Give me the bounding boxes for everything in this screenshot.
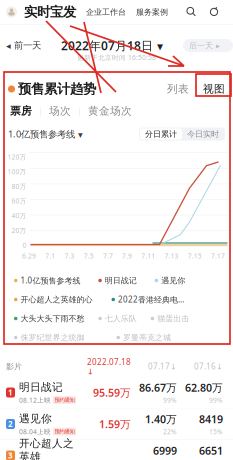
button[interactable]: 搜索 (186, 6, 197, 17)
staticText: 7.13 (165, 252, 179, 260)
staticText: 120万 (7, 152, 26, 161)
button[interactable]: 07.16↓ (177, 361, 223, 372)
staticText: 明日战记 (105, 276, 137, 285)
staticText: 列表 (167, 82, 189, 95)
button[interactable]: 大头大头下雨不愁 (14, 314, 84, 323)
staticText: 猫蛋出击 (157, 314, 189, 323)
button[interactable]: 实时宝发 (17, 4, 76, 20)
staticText: 影片 (6, 362, 22, 371)
button[interactable]: 2 (0, 408, 233, 439)
staticText: 遇见你 (19, 412, 52, 425)
button[interactable]: 侏罗纪世界之统御 (14, 333, 84, 342)
button[interactable]: 场次 (49, 104, 71, 117)
staticText: 7.7 (103, 252, 113, 260)
staticText: 6.29 (22, 252, 36, 260)
staticText: 7.9 (122, 252, 132, 260)
button[interactable]: 2022.07.18↓ (86, 357, 131, 376)
button[interactable]: 票房 (10, 104, 32, 117)
button[interactable]: 开心超人之英雄的心 (14, 295, 92, 304)
button[interactable]: 1 (0, 377, 233, 408)
staticText: | (193, 82, 199, 96)
staticText: 实时宝发 (24, 4, 76, 20)
staticText: 6651 (199, 443, 223, 458)
staticText: 22% (163, 427, 177, 436)
button[interactable]: 黄金场次 (88, 104, 132, 117)
staticText: 15% (209, 427, 223, 436)
staticText: 7.15 (188, 252, 202, 260)
staticText: 更新于北京时间 16:50:58 (77, 53, 156, 62)
staticText: 3 (8, 450, 13, 460)
button[interactable]: 后一天 ▸ (183, 39, 233, 52)
staticText: 95.59万 (93, 385, 131, 400)
staticText: 62.80万 (185, 380, 223, 395)
button[interactable]: 3 (0, 440, 233, 460)
button[interactable]: 今日实时 (182, 128, 224, 139)
staticText: 99% (163, 396, 177, 405)
staticText: 罗曼蒂克之城 (123, 333, 171, 342)
staticText: 大头大头下雨不愁 (20, 314, 84, 323)
staticText: 预约通知 (54, 397, 74, 403)
staticText: 86.67万 (139, 380, 177, 395)
button[interactable]: 刷新 (197, 6, 220, 17)
staticText: 07.16↓ (194, 361, 223, 372)
staticText: 0 (22, 241, 26, 249)
staticText: 07.17↓ (148, 361, 177, 372)
staticText: 08.04上映 (19, 427, 51, 436)
staticText: ◂ 前一天 (6, 40, 41, 51)
staticText: 99% (209, 396, 223, 405)
button[interactable]: 明日战记 (98, 276, 137, 285)
staticText: 视图 (203, 82, 225, 95)
staticText: 今日实时 (187, 129, 219, 139)
button[interactable]: 猫蛋出击 (151, 314, 189, 323)
button[interactable]: 视图 (203, 82, 225, 95)
button[interactable]: 遇见你 (155, 276, 185, 285)
button[interactable]: 列表 (167, 82, 189, 95)
staticText: 1 (8, 387, 13, 398)
staticText: 20万 (11, 226, 26, 235)
staticText: 分日累计 (145, 129, 177, 139)
staticText: 预约通知 (54, 428, 74, 435)
staticText: 侏罗纪世界之统御 (20, 333, 84, 342)
staticText: 七人乐队 (105, 314, 137, 323)
staticText: 场次 (49, 104, 71, 117)
staticText: 100万 (7, 167, 26, 176)
staticText: 预售累计趋势 (18, 81, 96, 97)
button[interactable]: 罗曼蒂克之城 (116, 333, 171, 342)
staticText: 7.1 (45, 252, 55, 260)
button[interactable]: 服务案例 (126, 7, 168, 17)
staticText: 1.0亿预售参考线 ▾ (8, 128, 83, 140)
staticText: 7.11 (141, 252, 155, 260)
button[interactable]: ◂ 前一天 (6, 40, 41, 51)
staticText: 遇见你 (161, 276, 185, 285)
button[interactable]: 分日累计 (140, 128, 182, 139)
staticText: 7.5 (84, 252, 94, 260)
staticText: 6999 (153, 443, 177, 458)
staticText: 服务案例 (136, 7, 168, 17)
button[interactable]: 2022香港经典电… (111, 294, 184, 305)
staticText: 7.17 (211, 252, 225, 260)
staticText: 票房 (10, 104, 32, 117)
staticText: 2022年07月18日 ▾ (61, 37, 163, 53)
staticText: 7.3 (64, 252, 74, 260)
staticText: 2022.07.18↓ (87, 357, 131, 376)
staticText: 明日战记 (19, 380, 63, 394)
staticText: 黄金场次 (88, 104, 132, 117)
button[interactable]: 1.0亿预售参考线 (14, 275, 80, 286)
button[interactable]: 1.0亿预售参考线 ▾ (8, 128, 83, 140)
staticText: 开心超人之英雄的心 (20, 295, 92, 304)
staticText: 1.0亿预售参考线 (20, 275, 80, 286)
button[interactable]: 个人中心 (6, 6, 17, 17)
button[interactable]: 07.17↓ (131, 361, 177, 372)
staticText: 60万 (11, 197, 26, 205)
staticText: 40万 (11, 211, 26, 220)
button[interactable]: 七人乐队 (98, 314, 137, 323)
staticText: 80万 (11, 182, 26, 191)
button[interactable]: 企业工作台 (76, 7, 126, 17)
staticText: 2022香港经典电… (118, 294, 184, 305)
staticText: 1.40万 (145, 412, 177, 426)
button[interactable]: 2022年07月18日 ▾ (61, 37, 163, 53)
staticText: 2 (8, 419, 13, 429)
staticText: 08.12上映 (19, 396, 51, 404)
staticText: 1.59万 (99, 417, 131, 431)
staticText: | (77, 105, 82, 117)
